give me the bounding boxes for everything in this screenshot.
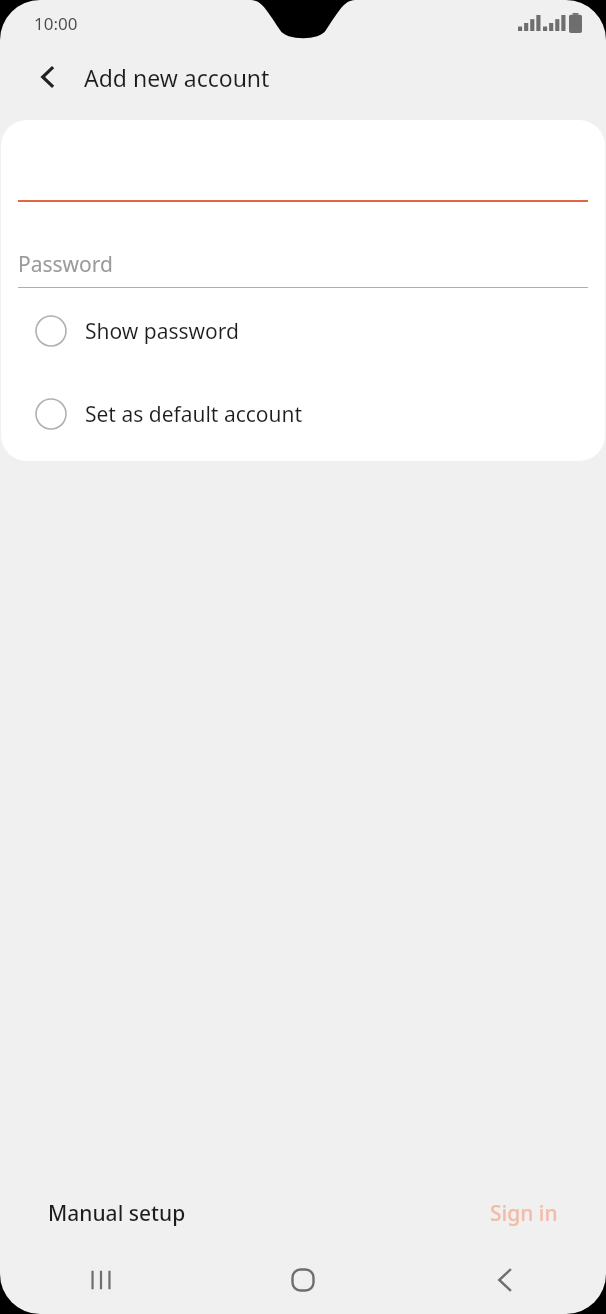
staticText: Show password [85, 317, 239, 346]
staticText: Password [18, 250, 113, 279]
staticText: Manual setup [48, 1199, 186, 1228]
staticText: Add new account [84, 62, 270, 93]
button[interactable]: Manual setup [30, 1189, 204, 1238]
button[interactable]: Back [22, 51, 74, 103]
button[interactable]: Recent apps [0, 1246, 202, 1314]
button[interactable]: Show password [1, 315, 605, 347]
button[interactable]: Password [1, 244, 605, 288]
button[interactable]: Set as default account [1, 398, 605, 430]
button[interactable]: Home [202, 1246, 404, 1314]
button[interactable] [1, 120, 605, 202]
button[interactable]: Sign in [472, 1189, 576, 1238]
staticText: 10:00 [34, 12, 78, 35]
staticText: Set as default account [85, 400, 303, 429]
staticText: Sign in [490, 1199, 558, 1228]
button[interactable]: Back [404, 1246, 606, 1314]
